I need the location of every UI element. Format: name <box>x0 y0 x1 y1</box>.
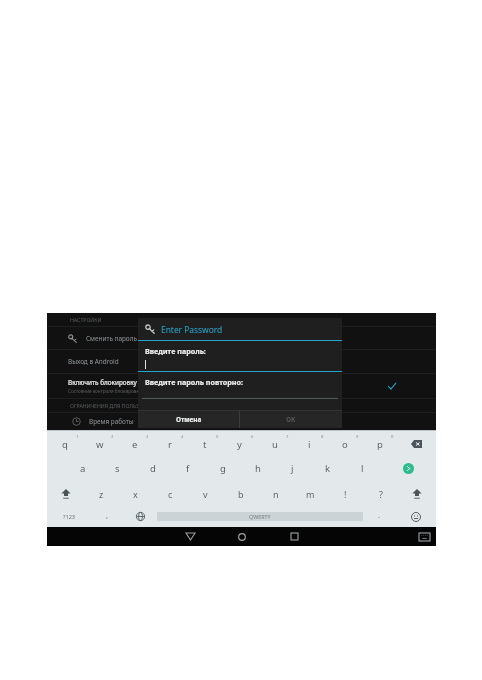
button[interactable]: f <box>170 456 205 481</box>
button[interactable]: e <box>117 431 152 456</box>
button[interactable]: Change language <box>124 506 157 527</box>
staticText: z <box>99 488 104 500</box>
staticText: Включить блокировку <box>68 378 137 387</box>
button[interactable]: c <box>153 481 188 506</box>
button[interactable]: Сменить пароль <box>47 327 436 349</box>
staticText: j <box>291 462 294 475</box>
staticText: Состояние контроля блокировки <box>68 388 142 394</box>
button[interactable]: Enter <box>380 456 436 481</box>
staticText: x <box>133 488 138 500</box>
staticText: r <box>168 438 172 451</box>
button[interactable]: p <box>362 431 397 456</box>
button[interactable]: r <box>152 431 187 456</box>
staticText: 8 <box>321 434 324 440</box>
staticText: Сменить пароль <box>86 334 137 343</box>
button[interactable]: t <box>187 431 222 456</box>
staticText: t <box>203 438 207 451</box>
button[interactable]: QWERTY <box>157 512 363 521</box>
staticText: b <box>238 488 244 500</box>
staticText: . <box>378 510 381 520</box>
staticText: q <box>62 438 68 451</box>
staticText: g <box>220 462 226 475</box>
button[interactable]: Время работы <box>47 413 436 430</box>
staticText: d <box>150 462 156 475</box>
staticText: ! <box>344 488 347 500</box>
staticText: v <box>203 488 208 500</box>
button[interactable]: Recents <box>268 527 320 546</box>
staticText: 9 <box>356 434 359 440</box>
button[interactable]: ! <box>328 481 363 506</box>
button[interactable]: y <box>222 431 257 456</box>
staticText: s <box>115 462 120 475</box>
staticText: u <box>272 438 278 451</box>
button[interactable]: Отмена <box>138 411 239 428</box>
button[interactable]: Back <box>164 527 216 546</box>
button[interactable]: o <box>327 431 362 456</box>
staticText: Время работы <box>89 417 134 426</box>
button[interactable]: v <box>188 481 223 506</box>
staticText: 7 <box>286 434 289 440</box>
staticText: 5 <box>216 434 219 440</box>
staticText: i <box>308 438 311 451</box>
button[interactable]: d <box>135 456 170 481</box>
staticText: f <box>186 462 190 475</box>
button[interactable]: Backspace <box>397 431 436 456</box>
staticText: 1 <box>76 434 79 440</box>
button[interactable]: j <box>275 456 310 481</box>
staticText: Введите пароль повторно: <box>145 377 243 387</box>
button[interactable]: s <box>100 456 135 481</box>
button[interactable]: h <box>240 456 275 481</box>
staticText: Введите пароль: <box>145 346 206 356</box>
staticText: h <box>255 462 261 475</box>
button[interactable]: ?123 <box>47 506 91 527</box>
button[interactable]: u <box>257 431 292 456</box>
staticText: a <box>80 462 86 475</box>
staticText: m <box>306 488 315 500</box>
button[interactable]: i <box>292 431 327 456</box>
button[interactable]: k <box>310 456 345 481</box>
staticText: 6 <box>251 434 254 440</box>
staticText: 4 <box>181 434 184 440</box>
staticText: o <box>342 438 348 451</box>
button[interactable]: Shift <box>398 481 436 506</box>
button[interactable]: z <box>84 481 118 506</box>
staticText: y <box>237 438 242 451</box>
button[interactable]: w <box>82 431 117 456</box>
button[interactable]: q <box>47 431 82 456</box>
button[interactable]: Shift <box>47 481 84 506</box>
staticText: 2 <box>111 434 114 440</box>
staticText: НАСТРОЙКИ <box>70 316 102 323</box>
staticText: c <box>168 488 173 500</box>
button[interactable]: g <box>205 456 240 481</box>
staticText: k <box>325 462 331 475</box>
staticText: ?123 <box>63 513 76 521</box>
staticText: Выход в Android <box>68 357 119 366</box>
staticText: QWERTY <box>249 513 271 520</box>
button[interactable]: , <box>91 506 124 527</box>
button[interactable]: a <box>65 456 100 481</box>
button[interactable]: OK <box>240 411 342 428</box>
staticText: OK <box>286 415 296 424</box>
button[interactable]: Выход в Android <box>47 350 436 373</box>
staticText: n <box>273 488 279 500</box>
button[interactable]: x <box>118 481 153 506</box>
button[interactable]: n <box>258 481 293 506</box>
button[interactable]: Включить блокировку <box>47 374 436 398</box>
staticText: , <box>106 510 109 520</box>
staticText: Enter Password <box>161 324 223 335</box>
staticText: e <box>132 438 138 451</box>
staticText: ОГРАНИЧЕНИЯ ДЛЯ ПОЛЬЗОВАТЕЛЯ <box>70 402 163 409</box>
button[interactable]: l <box>345 456 380 481</box>
staticText: ? <box>379 488 383 500</box>
button[interactable]: m <box>293 481 328 506</box>
button[interactable]: b <box>223 481 258 506</box>
button[interactable]: Emoji <box>396 506 436 527</box>
button[interactable]: Home <box>216 527 268 546</box>
button[interactable]: ? <box>363 481 398 506</box>
staticText: l <box>361 462 364 475</box>
staticText: p <box>377 438 383 451</box>
button[interactable]: Hide keyboard <box>419 533 430 541</box>
staticText: w <box>96 438 104 451</box>
staticText: 3 <box>146 434 149 440</box>
